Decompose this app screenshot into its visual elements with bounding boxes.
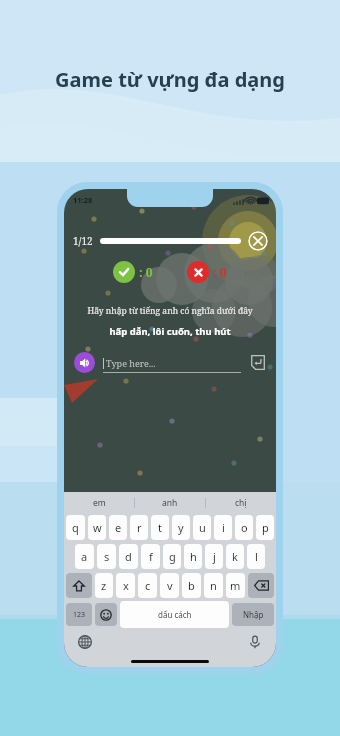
staticText: u bbox=[199, 520, 206, 535]
button[interactable]: k bbox=[226, 544, 244, 569]
staticText: x bbox=[123, 578, 129, 593]
button[interactable]: Play audio bbox=[74, 352, 95, 373]
staticText: chị bbox=[235, 497, 247, 509]
staticText: k bbox=[232, 549, 238, 564]
staticText: a bbox=[81, 549, 88, 564]
button[interactable]: o bbox=[235, 515, 253, 540]
button[interactable]: m bbox=[226, 573, 245, 598]
staticText: h bbox=[190, 549, 197, 564]
button[interactable]: s bbox=[97, 544, 116, 569]
staticText: dấu cách bbox=[158, 609, 192, 620]
button[interactable]: t bbox=[151, 515, 169, 540]
staticText: w bbox=[93, 520, 102, 535]
staticText: hấp dẫn, lôi cuốn, thu hút bbox=[64, 325, 276, 338]
button[interactable]: p bbox=[256, 515, 274, 540]
staticText: p bbox=[262, 520, 269, 535]
button[interactable]: z bbox=[95, 573, 113, 598]
button[interactable]: Close bbox=[248, 231, 268, 251]
staticText: Nhập bbox=[243, 609, 264, 620]
button[interactable]: w bbox=[88, 515, 106, 540]
button[interactable]: Language bbox=[78, 635, 92, 649]
staticText: : 0 bbox=[213, 264, 227, 280]
button[interactable]: q bbox=[66, 515, 85, 540]
staticText: q bbox=[72, 520, 79, 535]
staticText: r bbox=[137, 520, 142, 535]
button[interactable]: dấu cách bbox=[120, 601, 229, 628]
staticText: i bbox=[222, 520, 225, 535]
button[interactable]: c bbox=[138, 573, 157, 598]
button[interactable]: Dictate bbox=[248, 635, 262, 649]
button[interactable]: b bbox=[182, 573, 201, 598]
button[interactable]: 123 bbox=[66, 603, 92, 626]
staticText: z bbox=[101, 578, 107, 593]
staticText: o bbox=[241, 520, 248, 535]
staticText: : 0 bbox=[139, 264, 153, 280]
staticText: n bbox=[210, 578, 217, 593]
button[interactable]: n bbox=[204, 573, 223, 598]
button[interactable]: Submit bbox=[249, 354, 266, 371]
staticText: Hãy nhập từ tiếng anh có nghĩa dưới đây bbox=[64, 305, 276, 317]
button[interactable]: h bbox=[184, 544, 202, 569]
button[interactable]: i bbox=[214, 515, 232, 540]
button[interactable]: em bbox=[64, 492, 134, 513]
button[interactable]: f bbox=[141, 544, 160, 569]
button[interactable]: Shift bbox=[66, 573, 92, 598]
staticText: s bbox=[104, 549, 110, 564]
staticText: 11:28 bbox=[73, 195, 93, 205]
staticText: 1/12 bbox=[73, 234, 93, 248]
button[interactable]: e bbox=[109, 515, 127, 540]
staticText: b bbox=[188, 578, 195, 593]
staticText: m bbox=[230, 578, 241, 593]
staticText: g bbox=[169, 549, 176, 564]
button[interactable]: v bbox=[160, 573, 179, 598]
button[interactable]: u bbox=[193, 515, 211, 540]
staticText: d bbox=[125, 549, 132, 564]
staticText: e bbox=[115, 520, 122, 535]
button[interactable]: r bbox=[130, 515, 148, 540]
button[interactable]: j bbox=[205, 544, 223, 569]
staticText: anh bbox=[162, 497, 178, 509]
button[interactable]: a bbox=[75, 544, 94, 569]
button[interactable]: Emoji bbox=[95, 603, 117, 626]
staticText: y bbox=[178, 520, 184, 535]
staticText: v bbox=[167, 578, 173, 593]
staticText: em bbox=[93, 497, 106, 509]
staticText: 123 bbox=[73, 610, 86, 620]
button[interactable]: Backspace bbox=[248, 573, 274, 598]
staticText: c bbox=[145, 578, 151, 593]
button[interactable]: x bbox=[116, 573, 135, 598]
button[interactable]: g bbox=[163, 544, 181, 569]
button[interactable]: chị bbox=[206, 492, 276, 513]
button[interactable]: d bbox=[119, 544, 138, 569]
staticText: t bbox=[158, 520, 162, 535]
button[interactable]: Type here... bbox=[103, 353, 241, 373]
button[interactable]: l bbox=[247, 544, 265, 569]
button[interactable]: Nhập bbox=[232, 603, 274, 626]
staticText: f bbox=[149, 549, 153, 564]
button[interactable]: y bbox=[172, 515, 190, 540]
staticText: j bbox=[213, 549, 216, 564]
staticText: Game từ vựng đa dạng bbox=[0, 66, 340, 93]
button[interactable]: anh bbox=[135, 492, 205, 513]
staticText: Type here... bbox=[106, 357, 156, 369]
staticText: l bbox=[255, 549, 258, 564]
